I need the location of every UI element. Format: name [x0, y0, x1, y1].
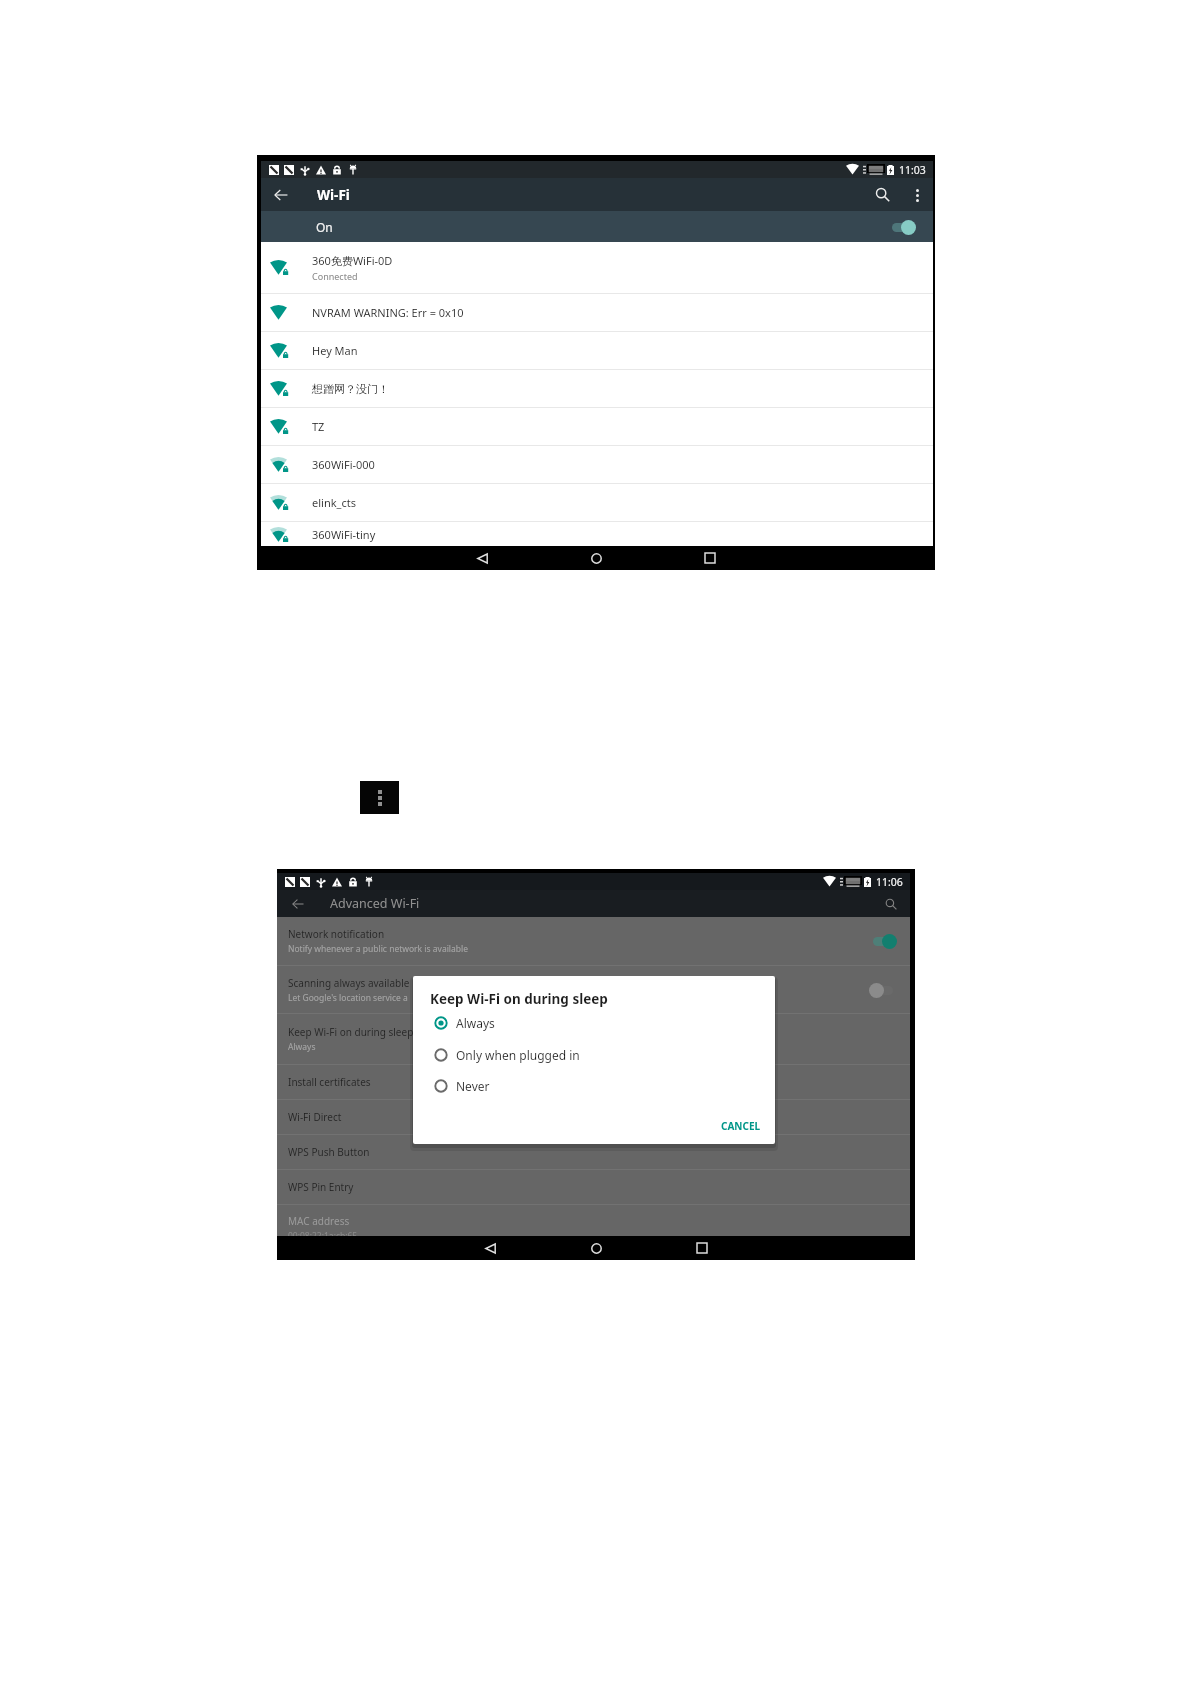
staticText: TZ	[312, 419, 325, 434]
button[interactable]: Search	[876, 890, 906, 917]
staticText: Only when plugged in	[456, 1047, 580, 1063]
button[interactable]: Hey Man	[261, 332, 933, 369]
staticText: Keep Wi-Fi on during sleep	[430, 990, 608, 1008]
staticText: On	[316, 219, 333, 235]
staticText: 360WiFi-000	[312, 457, 375, 472]
staticText: WPS Pin Entry	[288, 1180, 354, 1194]
staticText: Notify whenever a public network is avai…	[288, 943, 469, 955]
button[interactable]: Back	[478, 1236, 502, 1260]
staticText: Keep Wi-Fi on during sleep	[288, 1025, 414, 1039]
staticText: 11:06	[876, 875, 903, 889]
button[interactable]: More options	[903, 181, 931, 209]
staticText: Always	[288, 1041, 316, 1053]
staticText: 00:08:22:1a:cb:65	[288, 1230, 358, 1236]
button[interactable]: Wi-Fi Direct	[277, 1100, 910, 1134]
staticText: 360免费WiFi-0D	[312, 253, 393, 268]
button[interactable]: Home	[584, 1236, 608, 1260]
staticText: Connected	[312, 270, 358, 282]
button[interactable]: Only when plugged in	[413, 1044, 775, 1066]
staticText: 11:03	[899, 163, 926, 177]
button[interactable]: Network notification	[277, 917, 910, 965]
staticText: Wi-Fi Direct	[288, 1110, 342, 1124]
button[interactable]: Always	[413, 1012, 775, 1034]
staticText: elink_cts	[312, 495, 356, 510]
staticText: Let Google's location service a	[288, 992, 408, 1004]
button[interactable]: WPS Push Button	[277, 1135, 910, 1169]
button[interactable]: 想蹭网？没门！	[261, 370, 933, 407]
button[interactable]: TZ	[261, 408, 933, 445]
staticText: Scanning always available	[288, 976, 410, 990]
button[interactable]: Recents	[690, 1236, 714, 1260]
button[interactable]: Back	[470, 546, 494, 570]
button[interactable]: NVRAM WARNING: Err = 0x10	[261, 294, 933, 331]
staticText: WPS Push Button	[288, 1145, 370, 1159]
button[interactable]: CANCEL	[716, 1115, 766, 1137]
staticText: 360WiFi-tiny	[312, 527, 376, 542]
button[interactable]: On	[261, 211, 933, 242]
staticText: Hey Man	[312, 343, 358, 358]
button[interactable]: WPS Pin Entry	[277, 1170, 910, 1204]
staticText: Install certificates	[288, 1075, 371, 1089]
button[interactable]: Never	[413, 1075, 775, 1097]
staticText: Never	[456, 1078, 490, 1094]
staticText: Advanced Wi-Fi	[330, 895, 420, 912]
staticText: 想蹭网？没门！	[312, 382, 389, 396]
staticText: CANCEL	[721, 1119, 761, 1133]
staticText: Always	[456, 1015, 495, 1031]
button[interactable]: Recents	[698, 546, 722, 570]
button[interactable]: Install certificates	[277, 1065, 910, 1099]
button[interactable]: Back	[264, 178, 297, 211]
button[interactable]: elink_cts	[261, 484, 933, 521]
staticText: MAC address	[288, 1214, 350, 1228]
button[interactable]: Home	[584, 546, 608, 570]
button[interactable]: 360WiFi-000	[261, 446, 933, 483]
staticText: Network notification	[288, 927, 385, 941]
button[interactable]: Back	[284, 890, 311, 917]
staticText: NVRAM WARNING: Err = 0x10	[312, 305, 464, 320]
button[interactable]: 360WiFi-tiny	[261, 522, 933, 546]
button[interactable]: MAC address	[277, 1205, 910, 1236]
button[interactable]: Keep Wi-Fi on during sleep	[277, 1014, 910, 1064]
button[interactable]: 360免费WiFi-0D	[261, 242, 933, 293]
button[interactable]: Search	[866, 178, 899, 211]
staticText: Wi-Fi	[317, 186, 350, 204]
button[interactable]: Scanning always available	[277, 966, 910, 1013]
